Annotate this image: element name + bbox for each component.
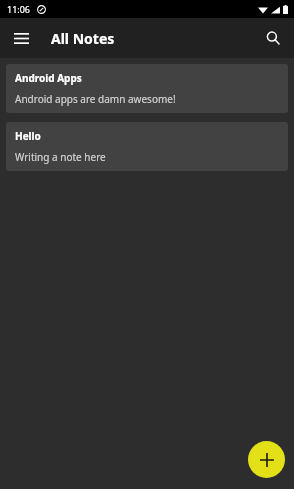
staticText: Android Apps [15,71,82,85]
staticText: Hello [15,129,41,143]
button[interactable]: Open navigation menu [6,23,36,53]
staticText: All Notes [51,29,115,48]
button[interactable]: Hello [6,122,288,171]
staticText: Android apps are damn awesome! [15,92,176,106]
staticText: 11:06 [7,3,31,15]
staticText: Writing a note here [15,150,106,164]
button[interactable]: Search [258,23,288,53]
button[interactable]: Android Apps [6,64,288,113]
button[interactable]: Add note [248,441,285,478]
